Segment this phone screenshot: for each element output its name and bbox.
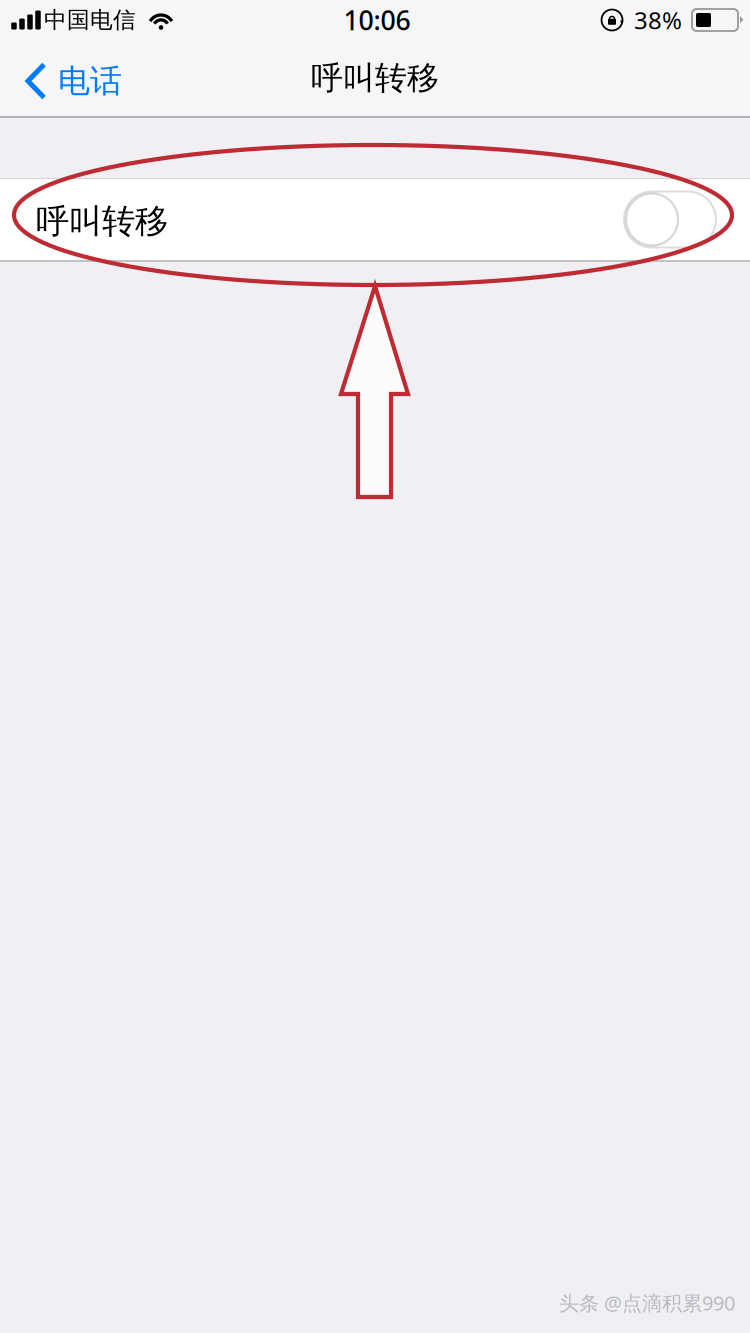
button[interactable]: 返回 电话 bbox=[0, 47, 136, 115]
button[interactable]: 呼叫转移 bbox=[0, 179, 750, 260]
button[interactable]: 关闭 bbox=[624, 191, 716, 247]
staticText: 10:06 bbox=[343, 2, 410, 38]
staticText: 呼叫转移 bbox=[311, 58, 439, 98]
staticText: 38% bbox=[634, 4, 682, 36]
staticText: 头条 @点滴积累990 bbox=[559, 1289, 735, 1316]
staticText: 电话 bbox=[58, 61, 122, 101]
staticText: 中国电信 bbox=[44, 6, 136, 34]
staticText: 呼叫转移 bbox=[36, 201, 168, 242]
